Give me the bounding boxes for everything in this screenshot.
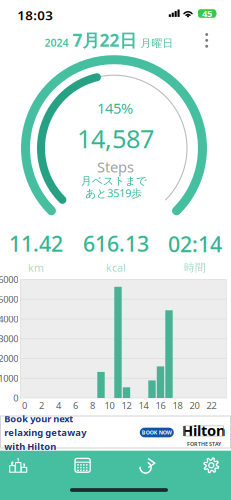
staticText: 10 xyxy=(104,399,114,412)
staticText: km xyxy=(28,261,44,275)
button[interactable]: More options xyxy=(196,29,218,52)
staticText: 5000 xyxy=(0,293,18,305)
button[interactable]: Hilton advertisement xyxy=(0,415,231,448)
staticText: 145% xyxy=(97,98,133,118)
staticText: Book your next xyxy=(4,412,73,425)
staticText: 616.13 xyxy=(83,229,149,258)
staticText: 16 xyxy=(155,399,165,412)
staticText: 20 xyxy=(189,399,199,412)
staticText: 4000 xyxy=(0,313,18,325)
staticText: 7月22日 xyxy=(72,28,136,51)
staticText: 45 xyxy=(202,7,212,20)
staticText: BOOK NOW xyxy=(142,429,172,436)
staticText: 12 xyxy=(121,399,131,412)
staticText: 月ベストまで xyxy=(81,174,147,187)
button[interactable]: Calendar xyxy=(57,450,109,480)
staticText: あと3519歩 xyxy=(85,186,142,200)
staticText: FOR THE STAY xyxy=(187,440,221,447)
staticText: 14,587 xyxy=(77,122,154,155)
staticText: 14 xyxy=(138,399,148,412)
staticText: 6 xyxy=(73,399,78,412)
button[interactable]: Ranking xyxy=(0,450,44,480)
staticText: 6000 xyxy=(0,273,18,286)
staticText: 02:14 xyxy=(168,230,222,258)
staticText: 1000 xyxy=(0,372,18,384)
staticText: with Hilton xyxy=(4,440,56,452)
staticText: Steps xyxy=(97,157,134,177)
staticText: 0 xyxy=(22,399,27,412)
button[interactable]: Share xyxy=(121,450,173,480)
staticText: 8 xyxy=(90,399,95,412)
staticText: Hilton xyxy=(182,420,226,440)
staticText: 0 xyxy=(13,392,18,404)
staticText: 11.42 xyxy=(9,229,63,258)
staticText: 3000 xyxy=(0,333,18,345)
staticText: kcal xyxy=(106,261,126,275)
staticText: 2024 xyxy=(44,35,68,50)
button[interactable]: Settings xyxy=(185,450,231,480)
staticText: 2 xyxy=(39,399,44,412)
staticText: 4 xyxy=(56,399,61,412)
staticText: 月曜日 xyxy=(140,37,173,50)
staticText: 18:03 xyxy=(17,6,53,24)
staticText: 18 xyxy=(172,399,182,412)
staticText: 時間 xyxy=(184,261,206,274)
staticText: 2000 xyxy=(0,352,18,365)
staticText: relaxing getaway xyxy=(4,426,86,439)
staticText: 22 xyxy=(206,399,216,412)
